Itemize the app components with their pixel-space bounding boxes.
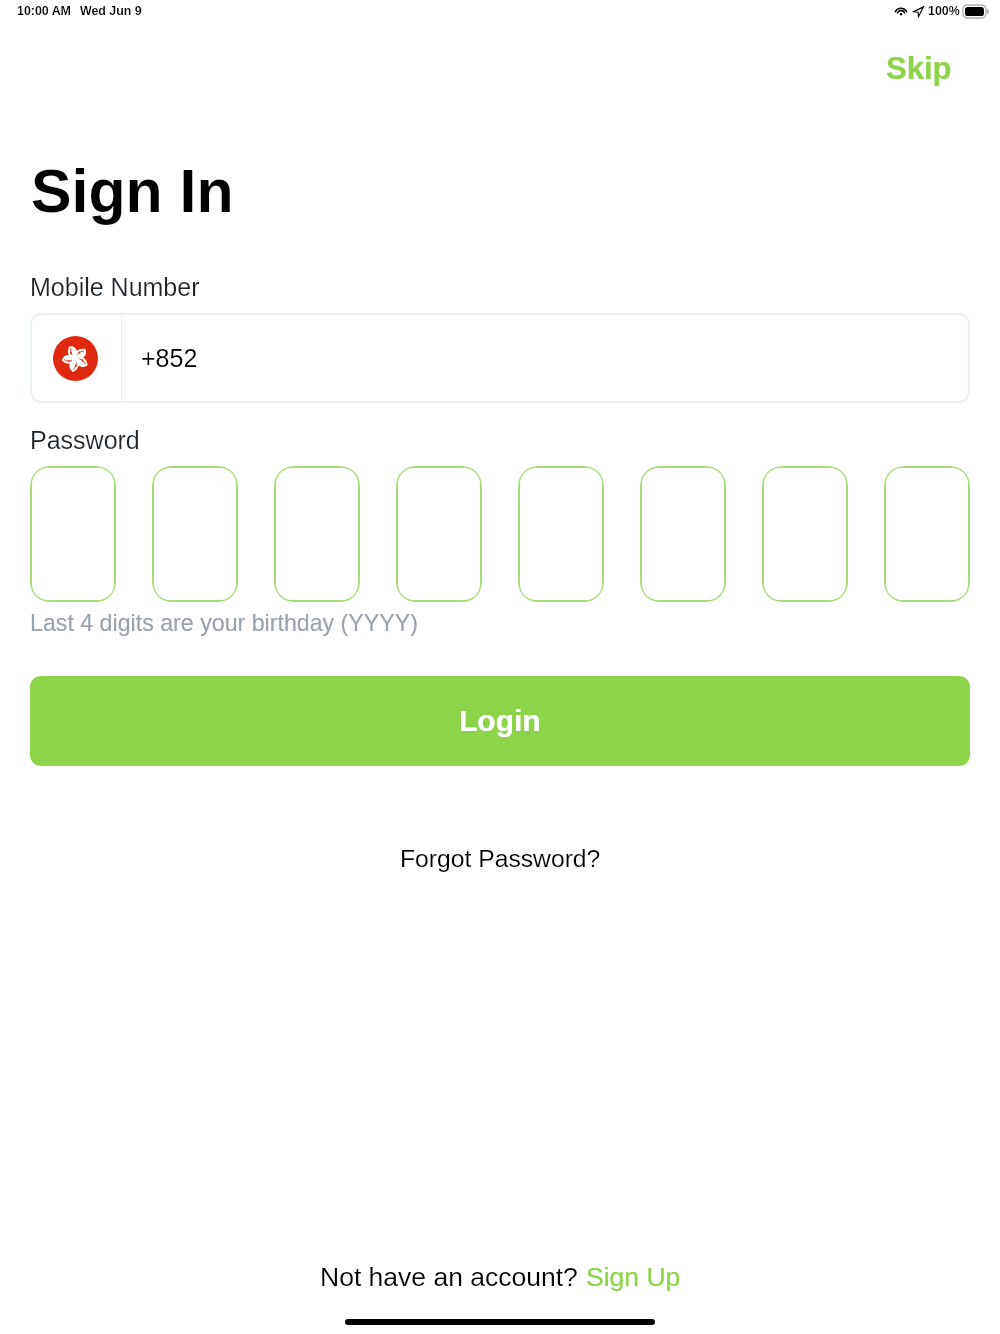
staticText: +852 — [141, 344, 198, 372]
other: Wi-Fi — [894, 6, 908, 17]
button[interactable]: Password digit 7 — [762, 466, 848, 602]
button[interactable]: Forgot Password? — [386, 837, 615, 881]
staticText: Last 4 digits are your birthday (YYYY) — [30, 610, 418, 636]
other: Location services — [913, 6, 924, 17]
staticText: 100% — [928, 4, 960, 18]
button[interactable]: Select country code, Hong Kong — [30, 313, 121, 403]
button[interactable]: Password digit 4 — [396, 466, 482, 602]
staticText: Not have an account? — [320, 1262, 586, 1292]
button[interactable]: Select country code, Hong Kong — [30, 313, 970, 403]
staticText: Wed Jun 9 — [80, 4, 142, 18]
staticText: Sign In — [31, 157, 234, 225]
button[interactable]: Skip — [870, 43, 968, 94]
button[interactable]: Password digit 3 — [274, 466, 360, 602]
button[interactable]: Sign Up — [586, 1262, 681, 1292]
staticText: Password — [30, 426, 140, 454]
staticText: 10:00 AM — [17, 4, 71, 18]
other: Battery full — [963, 5, 989, 18]
staticText: Skip — [886, 51, 952, 86]
staticText: Forgot Password? — [400, 845, 601, 873]
button[interactable]: Password digit 5 — [518, 466, 604, 602]
button[interactable]: Login — [30, 676, 970, 766]
button[interactable]: Password digit 1 — [30, 466, 116, 602]
button[interactable]: Password digit 6 — [640, 466, 726, 602]
staticText: Login — [459, 704, 541, 738]
staticText: Mobile Number — [30, 273, 200, 301]
button[interactable]: Password digit 8 — [884, 466, 970, 602]
button[interactable]: Password digit 2 — [152, 466, 238, 602]
staticText: Sign Up — [586, 1262, 681, 1292]
